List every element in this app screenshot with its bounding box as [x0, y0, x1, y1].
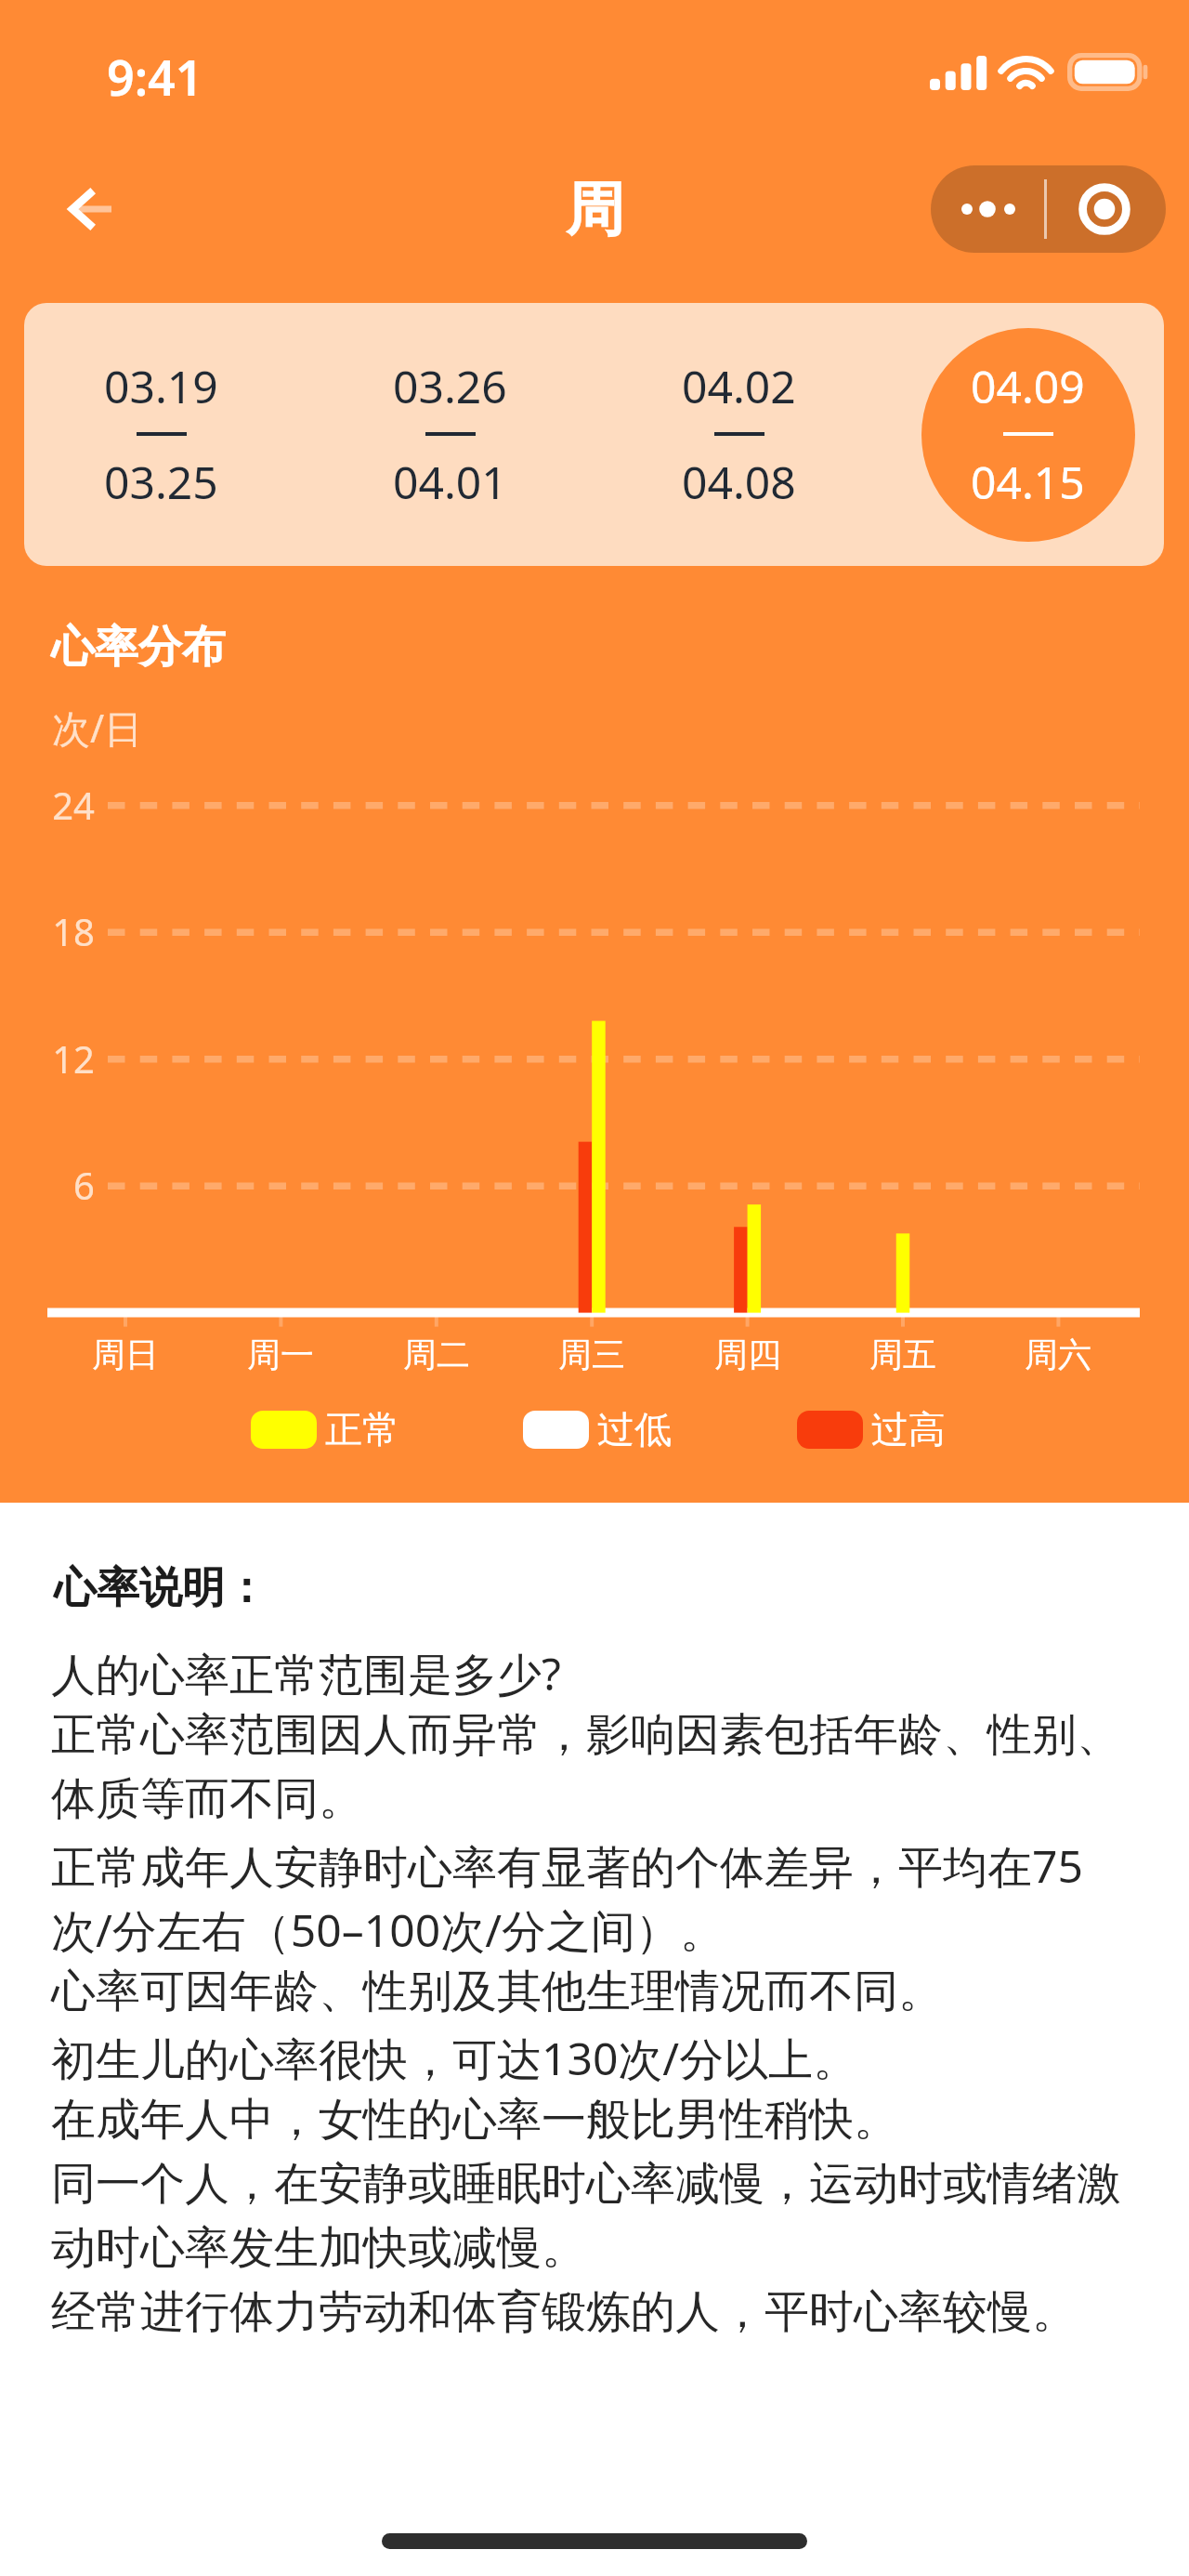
staticText: 周日 — [92, 1334, 159, 1375]
staticText: 初生儿的心率很快，可达130次/分以上。 — [51, 2028, 858, 2089]
staticText: 心率分布 — [51, 620, 226, 675]
staticText: 同一个人，在安静或睡眠时心率减慢，运动时或情绪激 — [51, 2156, 1121, 2212]
staticText: 经常进行体力劳动和体育锻炼的人，平时心率较慢。 — [51, 2284, 1077, 2340]
staticText: 心率可因年龄、性别及其他生理情况而不同。 — [51, 1964, 943, 2019]
staticText: 正常 — [325, 1406, 399, 1452]
staticText: 03.25 — [104, 452, 218, 512]
button[interactable]: Back — [44, 164, 133, 254]
staticText: 04.08 — [682, 452, 796, 512]
staticText: 次/分左右（50–100次/分之间）。 — [51, 1899, 725, 1961]
staticText: 周五 — [869, 1334, 936, 1375]
staticText: 动时心率发生加快或减慢。 — [51, 2220, 586, 2276]
staticText: 周三 — [558, 1334, 625, 1375]
staticText: 周二 — [403, 1334, 470, 1375]
staticText: 24 — [52, 780, 95, 830]
staticText: 04.02 — [682, 356, 796, 416]
staticText: 过低 — [597, 1406, 672, 1452]
staticText: 04.15 — [971, 452, 1085, 512]
staticText: 18 — [52, 906, 95, 956]
staticText: 12 — [52, 1033, 95, 1084]
staticText: 04.09 — [971, 356, 1085, 416]
staticText: 03.26 — [393, 356, 507, 416]
button[interactable]: 04.09 — [883, 303, 1164, 566]
staticText: 正常成年人安静时心率有显著的个体差异，平均在75 — [51, 1835, 1083, 1897]
staticText: 周六 — [1025, 1334, 1091, 1375]
staticText: 过高 — [871, 1406, 946, 1452]
staticText: 体质等而不同。 — [51, 1771, 363, 1827]
staticText: 04.01 — [393, 452, 507, 512]
button[interactable]: More options and Close — [931, 165, 1166, 253]
staticText: 03.19 — [104, 356, 218, 416]
staticText: 周四 — [714, 1334, 781, 1375]
staticText: 心率说明： — [54, 1561, 268, 1615]
staticText: 周 — [566, 173, 624, 246]
staticText: 6 — [73, 1160, 95, 1210]
staticText: 次/日 — [52, 702, 143, 754]
button[interactable]: 03.26 — [306, 303, 594, 566]
button[interactable]: 04.02 — [594, 303, 883, 566]
staticText: 在成年人中，女性的心率一般比男性稍快。 — [51, 2092, 898, 2148]
button[interactable]: 03.19 — [24, 303, 306, 566]
staticText: 人的心率正常范围是多少? — [51, 1643, 561, 1704]
staticText: 9:41 — [107, 44, 203, 110]
staticText: 正常心率范围因人而异常，影响因素包括年龄、性别、 — [51, 1707, 1121, 1763]
staticText: 周一 — [247, 1334, 314, 1375]
